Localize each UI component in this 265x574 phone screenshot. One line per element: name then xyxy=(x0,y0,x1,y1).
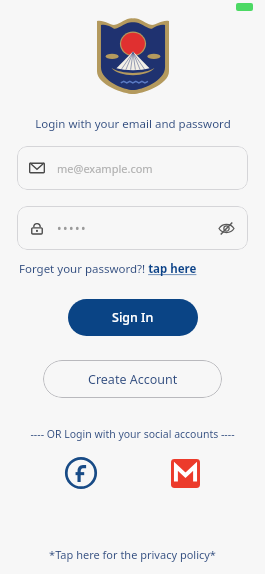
staticText: ••••• xyxy=(57,220,214,236)
button[interactable]: me@example.com xyxy=(17,146,248,190)
staticText: Sign In xyxy=(112,309,154,326)
button[interactable]: Show password xyxy=(214,216,238,240)
staticText: Create Account xyxy=(88,371,178,388)
button[interactable]: Sign In xyxy=(68,299,198,336)
staticText: ---- OR Login with your social accounts … xyxy=(30,427,235,441)
staticText: Login with your email and password xyxy=(35,116,231,132)
button[interactable]: ••••• xyxy=(17,206,248,250)
button[interactable]: Login with Facebook xyxy=(63,455,99,491)
button[interactable]: Login with Gmail xyxy=(167,455,203,491)
button[interactable]: Create Account xyxy=(43,360,222,398)
staticText: me@example.com xyxy=(57,161,153,176)
staticText: Forget your password?! tap here xyxy=(19,261,197,277)
button[interactable]: Forget your password?! tap here xyxy=(19,261,246,277)
button[interactable]: *Tap here for the privacy policy* xyxy=(0,547,265,574)
